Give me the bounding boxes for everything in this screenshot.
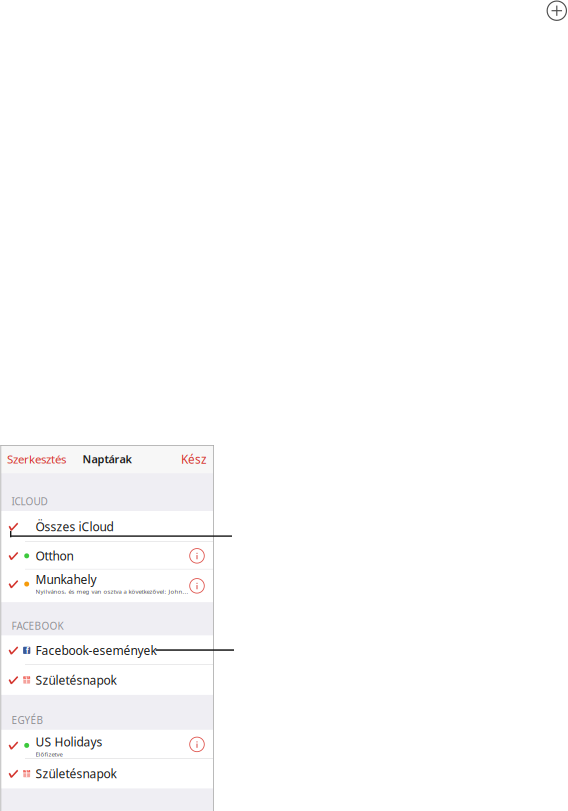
button[interactable]: Születésnapok xyxy=(1,759,213,788)
staticText: Születésnapok xyxy=(35,672,116,688)
staticText: US Holidays xyxy=(35,734,102,750)
button[interactable]: More info xyxy=(187,576,207,596)
staticText: Otthon xyxy=(35,548,73,564)
staticText: Munkahely xyxy=(35,571,96,587)
button[interactable]: More info xyxy=(187,546,207,566)
staticText: Facebook-események xyxy=(35,642,156,658)
staticText: Születésnapok xyxy=(35,765,116,782)
button[interactable]: Összes iCloud xyxy=(1,511,213,542)
staticText: Szerkesztés xyxy=(7,451,66,467)
staticText: FACEBOOK xyxy=(11,619,63,633)
staticText: Összes iCloud xyxy=(35,518,113,535)
button[interactable]: US Holidays xyxy=(1,730,213,759)
button[interactable]: Szerkesztés xyxy=(1,447,66,471)
staticText: Nyilvános, és meg van osztva a következő… xyxy=(35,587,188,596)
button[interactable]: Születésnapok xyxy=(1,665,213,695)
button[interactable]: More info xyxy=(187,734,207,754)
button[interactable]: f xyxy=(1,636,213,665)
staticText: Előfizetve xyxy=(35,750,62,758)
button[interactable]: Add xyxy=(544,0,568,24)
staticText: f xyxy=(26,645,29,656)
button[interactable]: Otthon xyxy=(1,542,213,570)
staticText: ICLOUD xyxy=(11,494,47,508)
staticText: Naptárak xyxy=(82,452,131,467)
button[interactable]: Munkahely xyxy=(1,570,213,602)
staticText: Kész xyxy=(181,451,207,467)
button[interactable]: Kész xyxy=(181,447,213,471)
staticText: EGYÉB xyxy=(11,713,43,727)
